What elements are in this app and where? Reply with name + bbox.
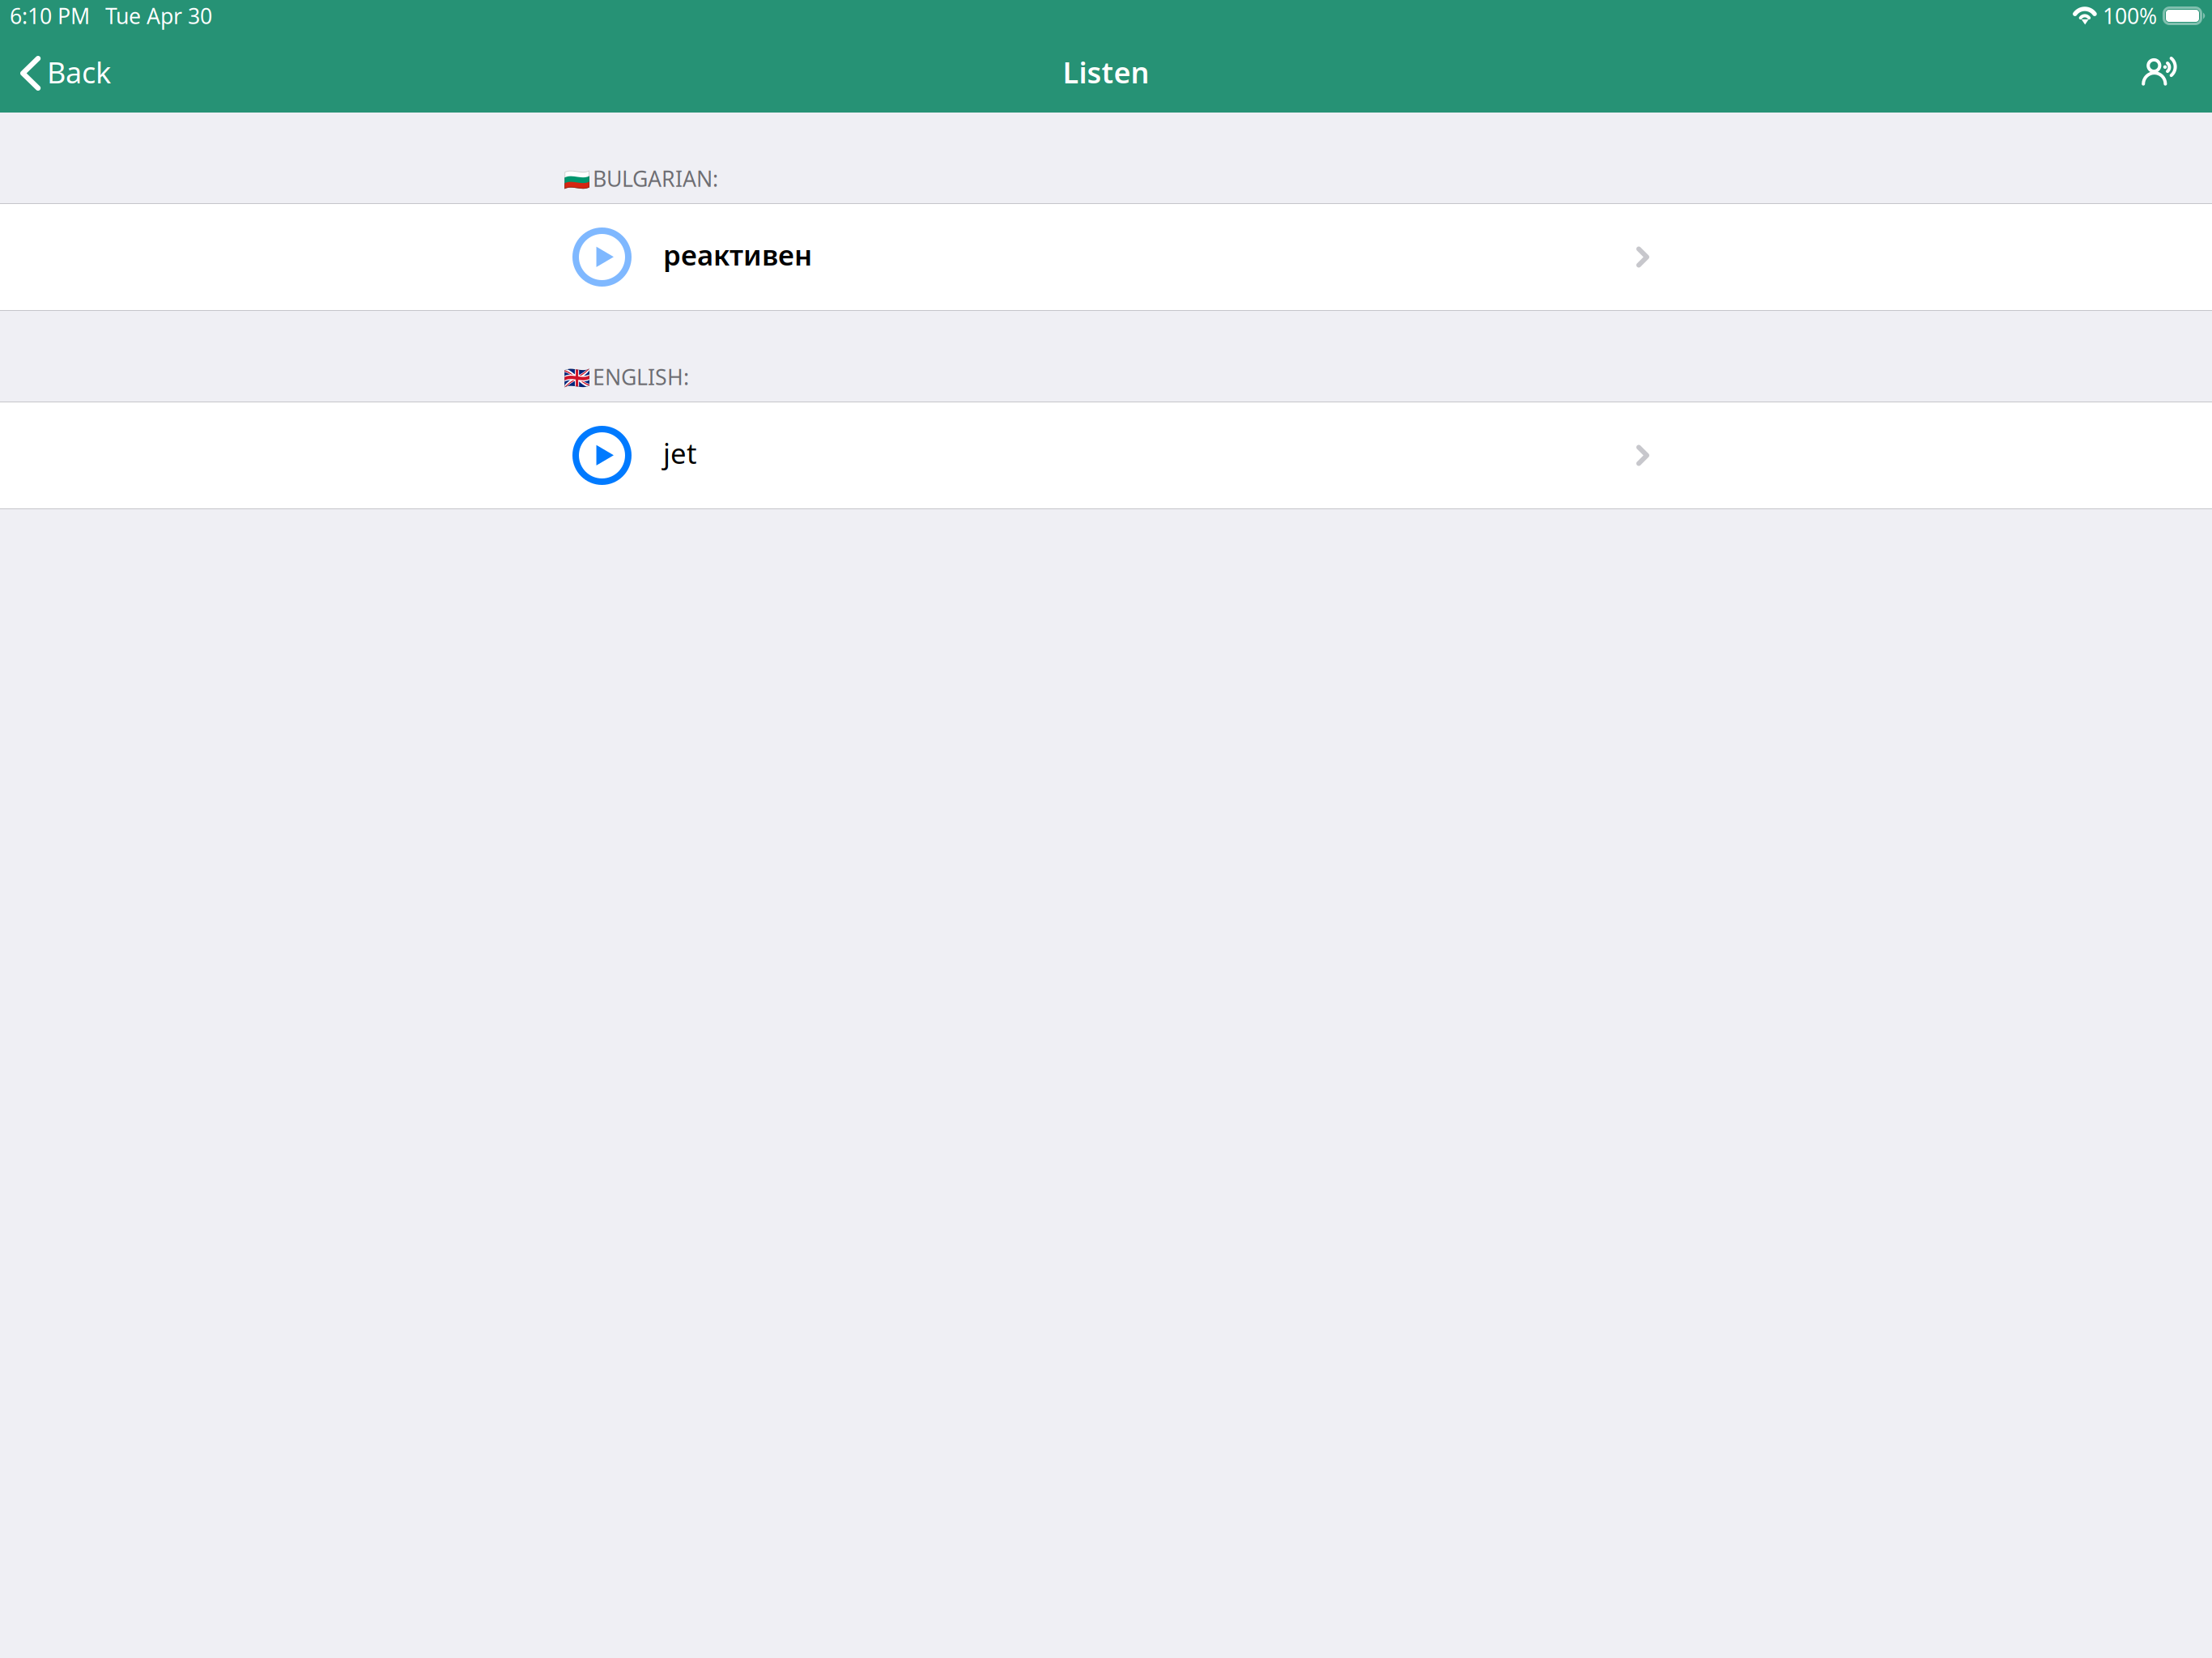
staticText: Tue Apr 30 bbox=[105, 1, 212, 30]
staticText: 🇬🇧 ENGLISH: bbox=[564, 362, 689, 391]
button[interactable]: Play Bulgarian pronunciation bbox=[572, 227, 632, 287]
button[interactable]: Speaking voice settings bbox=[2142, 38, 2212, 113]
button[interactable]: jet bbox=[0, 402, 2212, 509]
button[interactable]: Play English pronunciation bbox=[572, 426, 632, 485]
staticText: Listen bbox=[1063, 53, 1149, 91]
staticText: 100% bbox=[2103, 1, 2157, 30]
staticText: 🇧🇬 BULGARIAN: bbox=[564, 164, 718, 193]
button[interactable]: Back bbox=[0, 38, 125, 113]
button[interactable]: реактивен bbox=[0, 203, 2212, 311]
staticText: jet bbox=[663, 434, 697, 472]
staticText: Back bbox=[47, 53, 111, 91]
staticText: 6:10 PM bbox=[10, 1, 90, 30]
staticText: реактивен bbox=[663, 236, 812, 273]
